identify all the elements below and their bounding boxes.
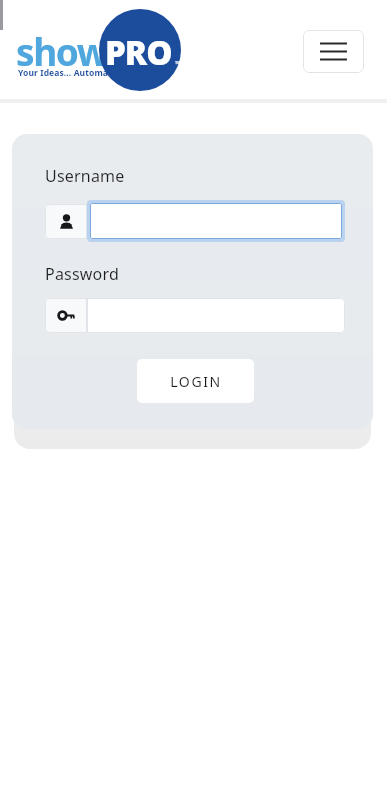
button[interactable]: LOGIN [137, 359, 254, 403]
staticText: Password [45, 263, 119, 285]
button[interactable]: Open navigation menu [303, 30, 364, 73]
staticText: LOGIN [170, 372, 222, 391]
staticText: PRO [105, 30, 172, 75]
staticText: show [16, 26, 108, 76]
button[interactable] [90, 203, 342, 239]
staticText: Username [45, 165, 125, 187]
staticText: ™ [175, 58, 182, 69]
staticText: Your Ideas... Automated. [18, 67, 125, 79]
button[interactable] [87, 298, 345, 333]
